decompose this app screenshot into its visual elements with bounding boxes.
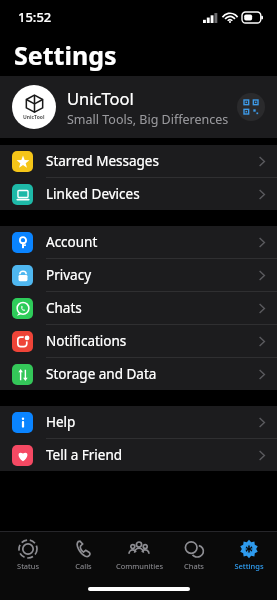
button[interactable]: UnicTool: [0, 76, 277, 138]
staticText: Tell a Friend: [46, 446, 123, 464]
staticText: Notifications: [46, 332, 127, 350]
staticText: Privacy: [46, 266, 92, 284]
button[interactable]: Chats: [0, 292, 277, 324]
button[interactable]: Notifications: [0, 325, 277, 357]
staticText: Chats: [184, 561, 204, 571]
staticText: Starred Messages: [46, 152, 159, 170]
button[interactable]: Chats: [167, 539, 221, 571]
button[interactable]: Show QR code: [237, 93, 265, 121]
staticText: Account: [46, 233, 98, 251]
staticText: Settings: [14, 38, 117, 72]
staticText: Storage and Data: [46, 365, 157, 383]
staticText: 15:52: [18, 8, 52, 26]
button[interactable]: Help: [0, 406, 277, 438]
button[interactable]: Status: [1, 539, 55, 571]
staticText: Linked Devices: [46, 185, 140, 203]
button[interactable]: Settings: [222, 539, 276, 571]
button[interactable]: Calls: [56, 539, 110, 571]
staticText: Help: [46, 413, 76, 431]
button[interactable]: Storage and Data: [0, 358, 277, 390]
staticText: UnicTool: [23, 114, 45, 121]
staticText: Status: [17, 561, 39, 571]
staticText: Settings: [234, 561, 264, 571]
button[interactable]: Account: [0, 226, 277, 258]
button[interactable]: Privacy: [0, 259, 277, 291]
button[interactable]: Linked Devices: [0, 178, 277, 210]
button[interactable]: Starred Messages: [0, 145, 277, 177]
button[interactable]: Tell a Friend: [0, 439, 277, 471]
staticText: Communities: [116, 561, 163, 571]
button[interactable]: Communities: [112, 539, 166, 571]
staticText: UnicTool: [67, 87, 134, 109]
staticText: Small Tools, Big Differences: [67, 111, 229, 128]
staticText: Chats: [46, 299, 82, 317]
staticText: Calls: [75, 561, 92, 571]
